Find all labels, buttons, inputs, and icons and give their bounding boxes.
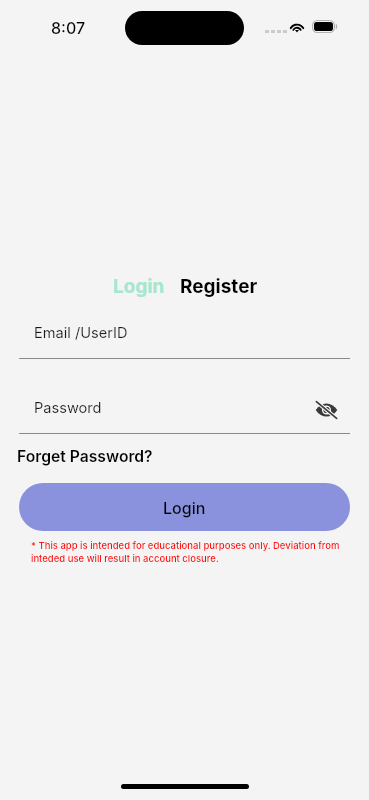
button[interactable]: Forget Password? — [17, 445, 153, 468]
button[interactable]: Show password — [314, 398, 338, 422]
staticText: * This app is intended for educational p… — [31, 540, 343, 564]
button[interactable]: Login — [107, 270, 171, 303]
staticText: 8:07 — [51, 18, 86, 37]
button[interactable]: Email /UserID — [19, 317, 350, 359]
staticText: Login — [113, 275, 165, 298]
staticText: Register — [180, 275, 258, 298]
button[interactable]: Password — [19, 392, 350, 434]
staticText: Password — [34, 399, 102, 417]
button[interactable]: Login — [19, 483, 350, 531]
staticText: Forget Password? — [17, 447, 153, 466]
button[interactable]: Register — [174, 270, 264, 303]
staticText: Email /UserID — [34, 324, 128, 342]
staticText: Login — [163, 498, 206, 517]
